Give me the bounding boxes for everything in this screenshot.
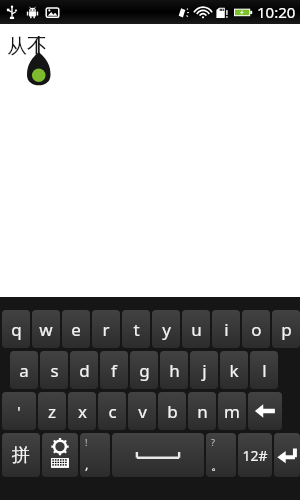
staticText: i xyxy=(224,318,229,341)
staticText: q xyxy=(11,318,22,341)
button[interactable]: g xyxy=(130,351,158,389)
button[interactable]: Switch to Pinyin xyxy=(2,433,40,477)
staticText: d xyxy=(79,359,90,382)
button[interactable]: z xyxy=(38,392,66,430)
button[interactable]: m xyxy=(218,392,246,430)
button[interactable]: Backspace xyxy=(248,392,282,430)
button[interactable]: a xyxy=(10,351,38,389)
staticText: c xyxy=(108,400,117,423)
button[interactable]: p xyxy=(272,310,300,348)
button[interactable]: Space xyxy=(112,433,204,477)
button[interactable]: n xyxy=(188,392,216,430)
button[interactable]: i xyxy=(212,310,240,348)
button[interactable]: w xyxy=(32,310,60,348)
staticText: , xyxy=(85,455,89,473)
button[interactable]: Enter xyxy=(274,433,300,477)
staticText: s xyxy=(50,359,59,382)
staticText: e xyxy=(71,318,81,341)
button[interactable]: e xyxy=(62,310,90,348)
staticText: x xyxy=(78,400,87,423)
staticText: ? xyxy=(211,436,215,448)
other: Battery charging xyxy=(233,5,253,19)
button[interactable]: v xyxy=(128,392,156,430)
staticText: g xyxy=(139,359,150,382)
button[interactable]: d xyxy=(70,351,98,389)
button[interactable]: Input settings xyxy=(42,433,78,477)
staticText: h xyxy=(169,359,180,382)
staticText: z xyxy=(48,400,56,423)
button[interactable]: q xyxy=(2,310,30,348)
other: USB debugging xyxy=(25,5,40,20)
staticText: 。 xyxy=(211,457,224,473)
staticText: a xyxy=(19,359,29,382)
staticText: y xyxy=(162,318,171,341)
staticText: b xyxy=(167,400,178,423)
button[interactable]: o xyxy=(242,310,270,348)
button[interactable]: y xyxy=(152,310,180,348)
button[interactable]: c xyxy=(98,392,126,430)
staticText: p xyxy=(281,318,292,341)
staticText: t xyxy=(133,318,140,341)
staticText: j xyxy=(202,359,207,382)
button[interactable]: Text cursor handle xyxy=(26,29,60,99)
button[interactable]: j xyxy=(190,351,218,389)
button[interactable]: f xyxy=(100,351,128,389)
staticText: m xyxy=(224,400,240,423)
staticText: l xyxy=(262,359,267,382)
staticText: k xyxy=(229,359,239,382)
other: USB connected xyxy=(4,4,20,20)
staticText: r xyxy=(102,318,110,341)
button[interactable]: k xyxy=(220,351,248,389)
staticText: ! xyxy=(85,436,88,448)
other: Wi-Fi xyxy=(195,5,211,20)
other: SD card xyxy=(215,5,229,20)
staticText: n xyxy=(197,400,208,423)
button[interactable]: Question mark and period xyxy=(206,433,236,477)
staticText: v xyxy=(138,400,147,423)
button[interactable]: l xyxy=(250,351,278,389)
staticText: ' xyxy=(17,401,21,421)
other: Vibrate mode xyxy=(176,5,191,20)
staticText: 从不 xyxy=(7,34,47,59)
button[interactable]: h xyxy=(160,351,188,389)
button[interactable]: ' xyxy=(2,392,36,430)
button[interactable]: b xyxy=(158,392,186,430)
staticText: 10:20 xyxy=(257,2,296,22)
button[interactable]: s xyxy=(40,351,68,389)
staticText: w xyxy=(39,318,53,341)
staticText: u xyxy=(191,318,202,341)
button[interactable]: Numbers and symbols xyxy=(238,433,272,477)
staticText: 拼 xyxy=(12,444,30,467)
button[interactable]: r xyxy=(92,310,120,348)
staticText: 12# xyxy=(242,446,268,465)
staticText: f xyxy=(111,359,117,382)
button[interactable]: Exclamation and comma xyxy=(80,433,110,477)
button[interactable]: t xyxy=(122,310,150,348)
button[interactable]: x xyxy=(68,392,96,430)
other: Screenshot saved xyxy=(45,5,60,20)
button[interactable]: u xyxy=(182,310,210,348)
staticText: o xyxy=(251,318,262,341)
